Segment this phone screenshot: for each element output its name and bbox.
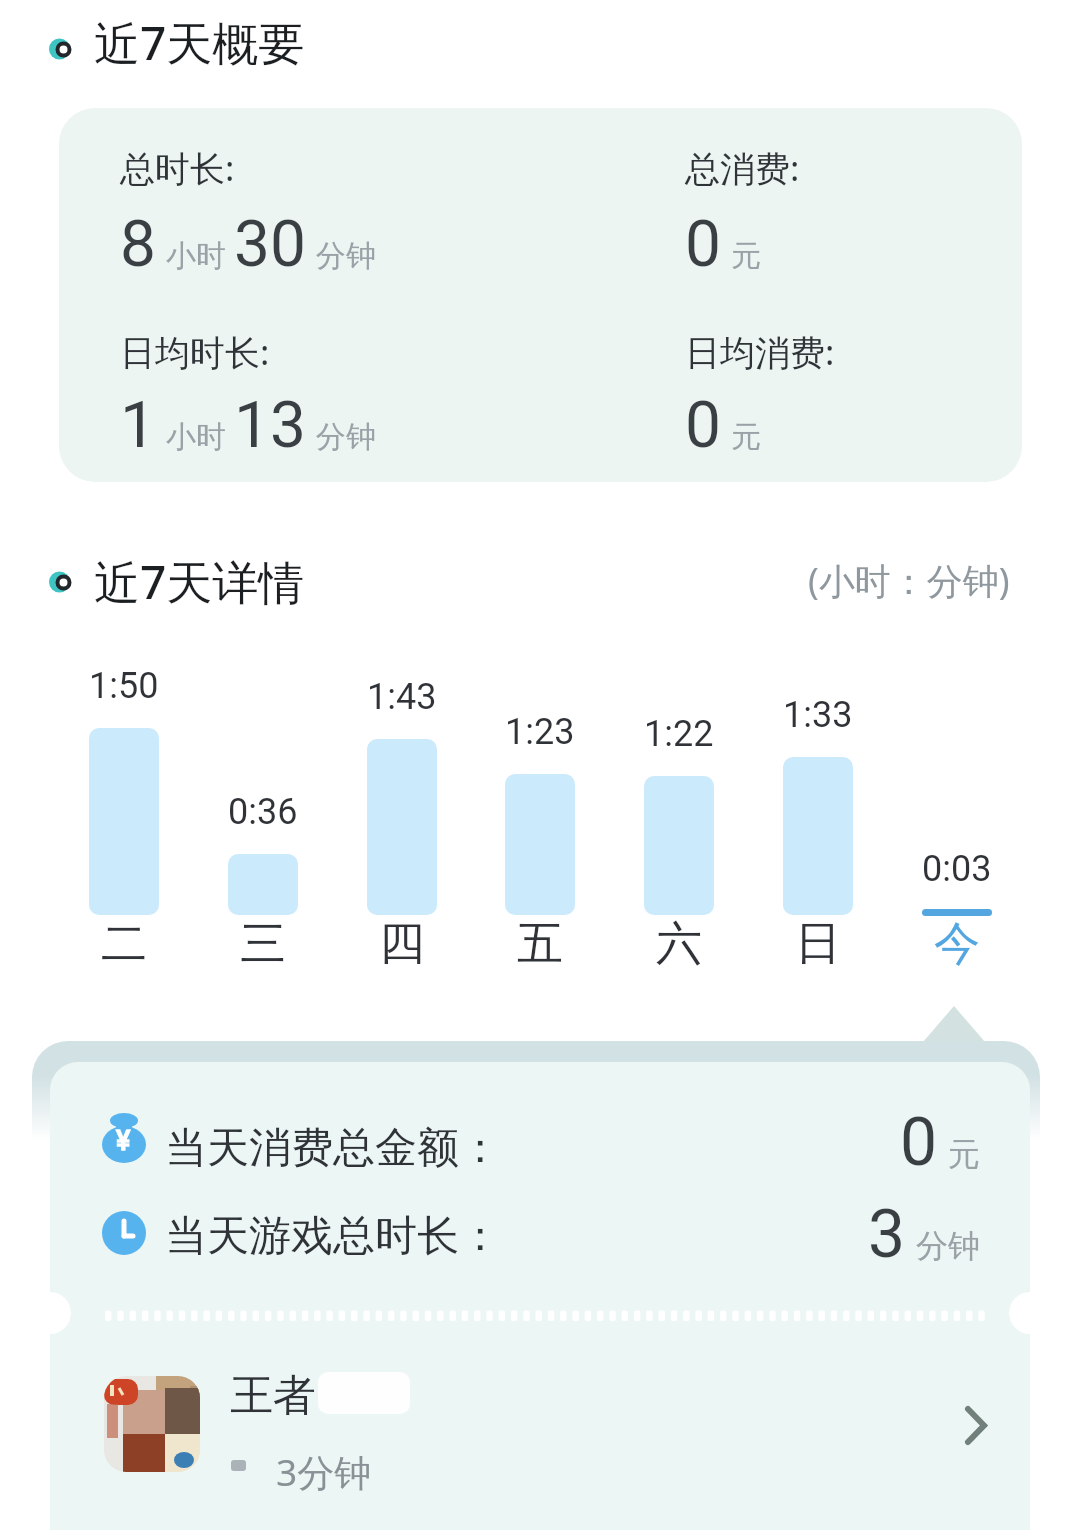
staticText: 当天游戏总时长： <box>165 1210 501 1263</box>
button[interactable] <box>104 1376 1030 1472</box>
staticText: 13 <box>234 388 306 463</box>
staticText: 四 <box>379 915 425 973</box>
staticText: 分钟 <box>316 418 376 456</box>
staticText: 近7天详情 <box>94 550 305 613</box>
staticText: 1:22 <box>644 713 714 755</box>
staticText: 1:33 <box>783 694 853 736</box>
staticText: 3 <box>868 1196 906 1273</box>
staticText: 8 <box>120 207 156 282</box>
staticText: 元 <box>731 237 761 275</box>
staticText: 五 <box>517 915 563 973</box>
staticText: 0:36 <box>228 791 298 833</box>
staticText: 分钟 <box>916 1226 980 1266</box>
staticText: ¥ <box>116 1125 131 1157</box>
staticText: 1:23 <box>505 711 575 753</box>
staticText: 0 <box>685 388 721 463</box>
staticText: 0 <box>685 207 721 282</box>
button[interactable]: 总时长: <box>59 108 1022 482</box>
staticText: 今 <box>934 915 980 973</box>
staticText: 3分钟 <box>276 1446 372 1497</box>
staticText: 1:50 <box>89 665 159 707</box>
staticText: 分钟 <box>316 237 376 275</box>
staticText: 日均消费: <box>685 328 835 376</box>
staticText: 日均时长: <box>120 328 270 376</box>
button[interactable]: 当天游戏总时长： <box>165 1210 501 1263</box>
staticText: 30 <box>234 207 306 282</box>
staticText: 小时 <box>166 237 226 275</box>
staticText: 元 <box>948 1134 980 1174</box>
staticText: 日 <box>795 915 841 973</box>
staticText: 当天消费总金额： <box>165 1122 501 1175</box>
staticText: 总时长: <box>120 144 235 192</box>
staticText: 近7天概要 <box>94 11 305 74</box>
staticText: 三 <box>240 915 286 973</box>
staticText: 0 <box>900 1104 938 1181</box>
staticText: 元 <box>731 418 761 456</box>
staticText: (小时：分钟) <box>808 556 1010 605</box>
button[interactable]: 当天消费总金额： <box>165 1122 501 1175</box>
staticText: 二 <box>101 915 147 973</box>
staticText: 六 <box>656 915 702 973</box>
staticText: 1:43 <box>367 676 437 718</box>
staticText: 小时 <box>166 418 226 456</box>
staticText: 总消费: <box>685 144 800 192</box>
staticText: 1 <box>120 388 156 463</box>
staticText: 0:03 <box>922 848 992 890</box>
staticText: 王者 <box>230 1369 316 1423</box>
